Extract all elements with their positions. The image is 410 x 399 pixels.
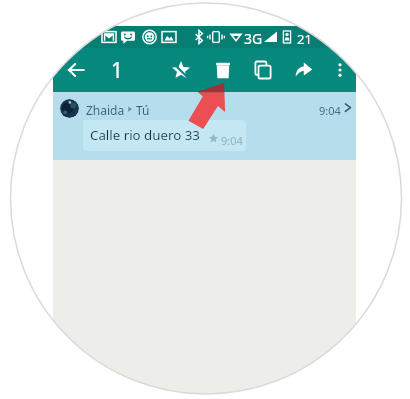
staticText: 21 bbox=[297, 30, 312, 48]
staticText: Calle rio duero 33 bbox=[90, 126, 200, 144]
staticText: 9:04 bbox=[319, 103, 341, 118]
staticText: 3G bbox=[244, 29, 263, 48]
button[interactable]: Copy bbox=[247, 54, 279, 86]
button[interactable]: Zhaida bbox=[53, 92, 356, 160]
staticText: Zhaida bbox=[86, 102, 125, 118]
button[interactable]: Unstar bbox=[165, 54, 197, 86]
button[interactable]: Delete bbox=[207, 54, 239, 86]
button[interactable]: More options bbox=[324, 54, 356, 86]
other: Open conversation bbox=[344, 103, 353, 112]
staticText: 1 bbox=[111, 56, 124, 85]
button[interactable]: Back bbox=[60, 54, 92, 86]
staticText: Tú bbox=[136, 102, 150, 118]
button[interactable]: Forward bbox=[288, 54, 320, 86]
staticText: 9:04 bbox=[221, 133, 243, 148]
